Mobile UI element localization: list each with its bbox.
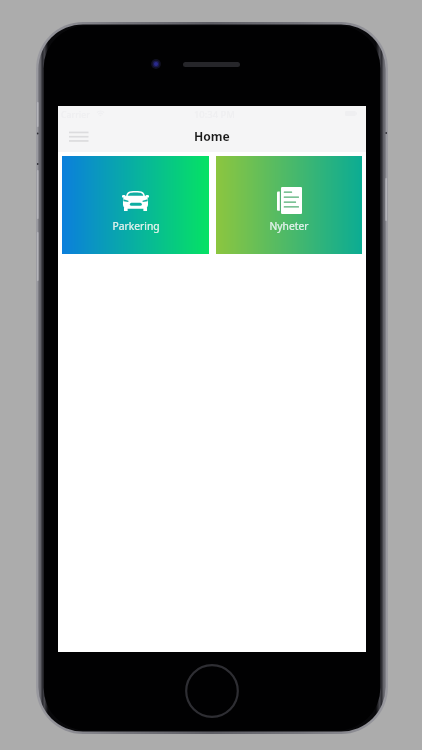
button[interactable]: Nyheter bbox=[216, 156, 362, 254]
staticText: Nyheter bbox=[269, 219, 309, 233]
staticText: Parkering bbox=[112, 219, 160, 233]
staticText: Home bbox=[194, 128, 230, 144]
button[interactable]: Parkering bbox=[62, 156, 209, 254]
button[interactable]: Home button bbox=[185, 664, 239, 718]
button[interactable]: Open navigation menu bbox=[64, 126, 94, 152]
